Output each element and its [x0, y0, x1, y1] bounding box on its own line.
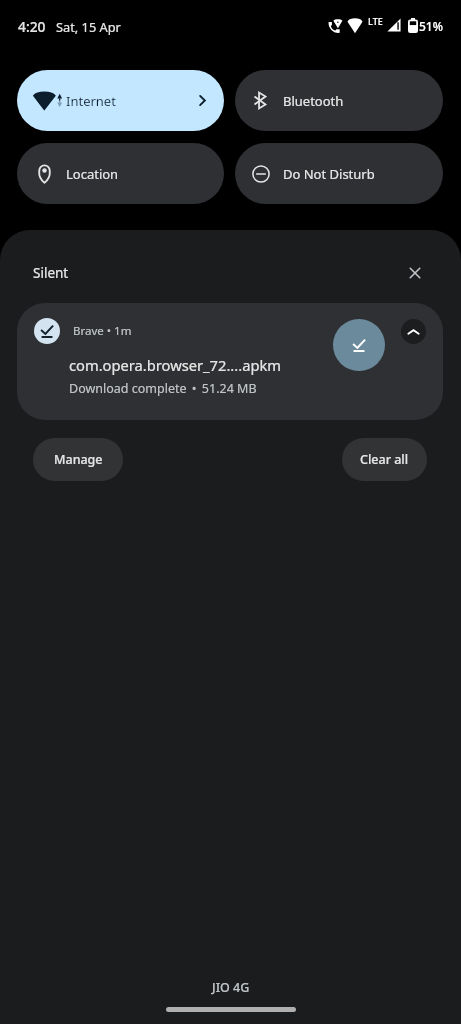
staticText: com.opera.browser_72....apkm	[69, 355, 281, 375]
staticText: Do Not Disturb	[283, 165, 375, 183]
button[interactable]: Expand notification	[401, 319, 426, 344]
staticText: Sat, 15 Apr	[56, 18, 121, 35]
staticText: Manage	[54, 451, 103, 468]
button[interactable]: Internet	[17, 70, 224, 131]
button[interactable]: Open download	[333, 319, 385, 371]
button[interactable]: Close	[402, 260, 428, 286]
staticText: Download complete • 51.24 MB	[69, 380, 257, 397]
staticText: Brave • 1m	[73, 323, 132, 339]
button[interactable]: Brave • 1m	[17, 303, 443, 420]
button[interactable]: Location	[17, 143, 224, 204]
staticText: Bluetooth	[283, 92, 344, 110]
button[interactable]: Do Not Disturb	[235, 143, 443, 204]
button[interactable]: Manage	[33, 438, 123, 481]
button[interactable]: Clear all	[342, 438, 427, 481]
staticText: 51%	[419, 18, 443, 34]
button[interactable]: Bluetooth	[235, 70, 443, 131]
staticText: JIO 4G	[212, 979, 250, 996]
staticText: LTE	[368, 15, 383, 27]
staticText: Location	[66, 165, 119, 183]
staticText: Internet	[66, 92, 116, 110]
staticText: 4:20	[18, 17, 46, 36]
staticText: Clear all	[360, 451, 409, 468]
staticText: Silent	[33, 264, 69, 282]
